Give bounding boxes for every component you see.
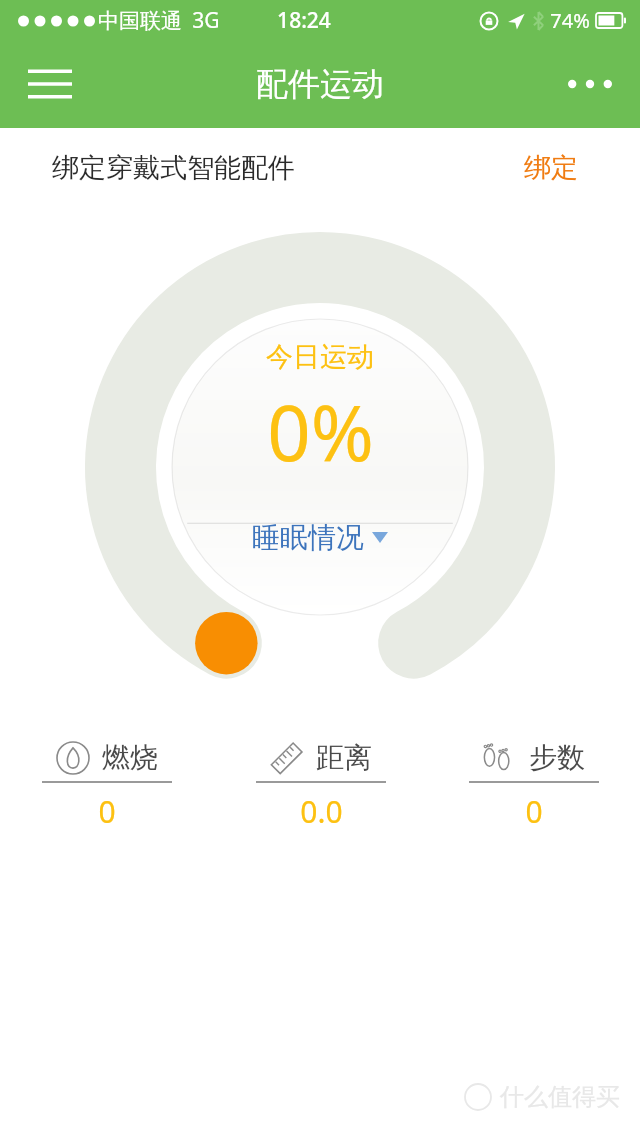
staticText: 74% [550, 7, 590, 34]
button[interactable]: Menu [22, 56, 78, 112]
staticText: 配件运动 [256, 64, 384, 104]
button[interactable]: More options [562, 56, 618, 112]
button[interactable]: 睡眠情况 [252, 520, 388, 555]
staticText: 18:24 [277, 6, 331, 35]
staticText: 中国联通 [98, 8, 182, 34]
button[interactable]: 距离 [214, 740, 427, 832]
staticText: 0.0 [300, 791, 343, 832]
staticText: 今日运动 [266, 340, 374, 374]
staticText: 距离 [316, 740, 372, 775]
staticText: 0% [267, 380, 374, 484]
staticText: 0 [98, 791, 116, 832]
staticText: 睡眠情况 [252, 520, 364, 555]
button[interactable]: 燃烧 [0, 740, 214, 832]
staticText: 步数 [529, 740, 585, 775]
button[interactable]: 步数 [427, 740, 640, 832]
staticText: 燃烧 [102, 740, 158, 775]
staticText: 绑定 [524, 151, 578, 185]
staticText: 0 [525, 791, 543, 832]
staticText: 什么值得买 [500, 1082, 620, 1112]
button[interactable]: 绑定穿戴式智能配件 [0, 128, 640, 208]
staticText: 3G [192, 6, 220, 35]
staticText: 绑定穿戴式智能配件 [52, 151, 295, 185]
